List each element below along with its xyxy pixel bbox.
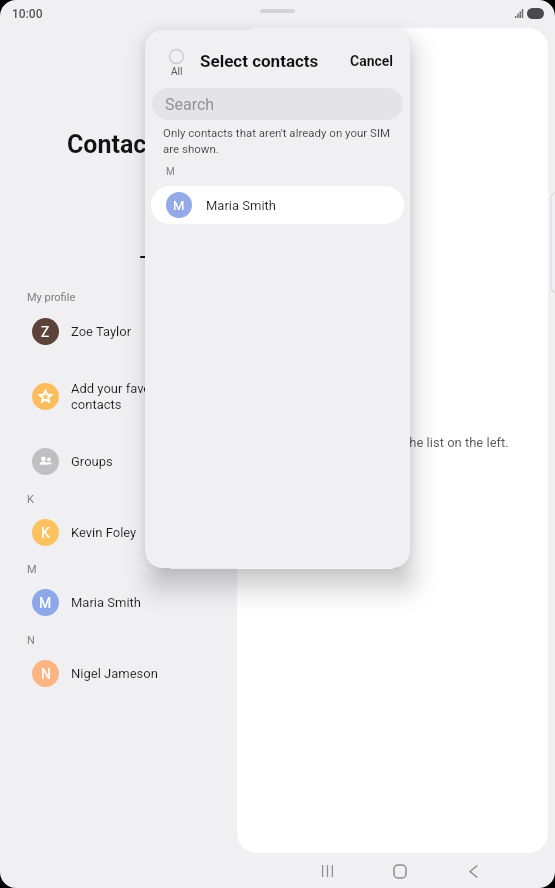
button[interactable]: M <box>151 186 404 224</box>
button[interactable]: K <box>0 510 237 554</box>
staticText: Maria Smith <box>71 595 141 610</box>
staticText: My profile <box>27 291 76 304</box>
staticText: 10:00 <box>12 7 43 21</box>
staticText: M <box>39 595 52 611</box>
button[interactable]: N <box>0 651 237 695</box>
button[interactable]: Back <box>453 851 493 888</box>
staticText: Search <box>165 95 215 114</box>
staticText: Select a contact from the list on the le… <box>278 435 509 450</box>
staticText: Cancel <box>350 53 394 69</box>
button[interactable]: All <box>169 49 184 78</box>
button[interactable]: Home <box>380 851 420 888</box>
staticText: Zoe Taylor <box>71 324 132 339</box>
staticText: K <box>27 493 34 506</box>
button[interactable]: Z <box>0 309 237 353</box>
button[interactable]: Cancel <box>344 49 400 73</box>
staticText: M <box>27 563 37 576</box>
staticText: Nigel Jameson <box>71 666 158 681</box>
staticText: Z <box>41 324 50 340</box>
staticText: Contacts <box>67 130 168 159</box>
staticText: All <box>171 66 183 78</box>
staticText: M <box>166 166 175 178</box>
button[interactable]: Groups <box>0 439 237 483</box>
button[interactable]: Add your favourite contacts <box>0 374 237 418</box>
staticText: M <box>173 198 185 213</box>
button[interactable]: Recents <box>307 851 347 888</box>
staticText: K <box>41 525 50 541</box>
button[interactable]: Search <box>152 88 403 120</box>
staticText: N <box>27 634 35 647</box>
staticText: Kevin Foley <box>71 525 137 540</box>
staticText: Only contacts that aren't already on you… <box>163 126 391 155</box>
staticText: Groups <box>71 454 113 469</box>
staticText: N <box>41 666 51 682</box>
staticText: Add your favourite contacts <box>71 381 177 412</box>
staticText: Select contacts <box>200 51 319 71</box>
staticText: Maria Smith <box>206 198 276 213</box>
button[interactable]: M <box>0 580 237 624</box>
